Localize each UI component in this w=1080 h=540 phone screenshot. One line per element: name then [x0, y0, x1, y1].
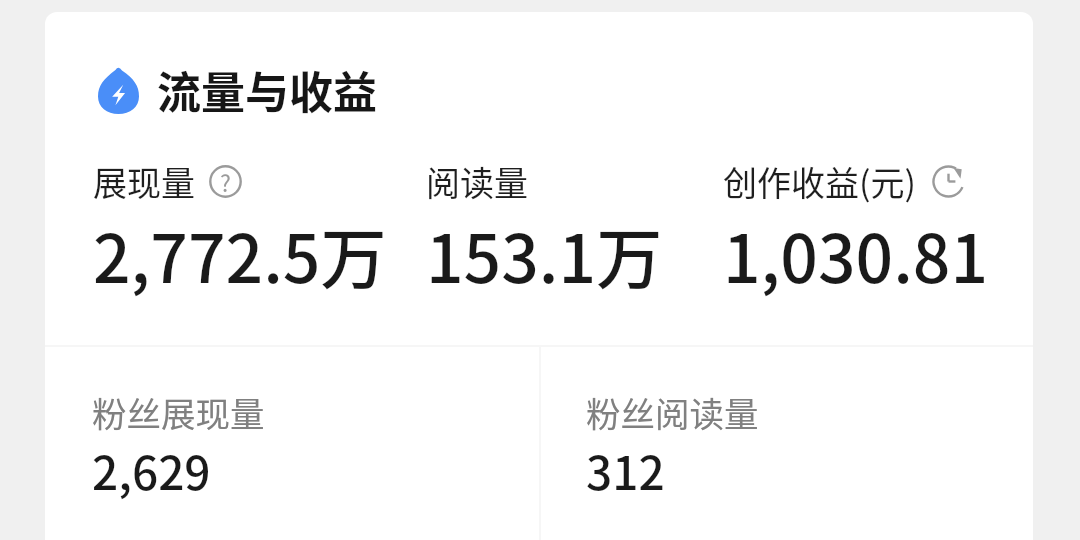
staticText: ? — [220, 165, 231, 198]
button[interactable]: 粉丝展现量 — [45, 347, 538, 540]
staticText: 展现量 — [93, 157, 195, 206]
staticText: 153.1万 — [426, 206, 663, 302]
button[interactable]: 阅读量 — [426, 157, 711, 302]
button[interactable]: 收益历史 — [932, 165, 965, 198]
staticText: 流量与收益 — [157, 58, 377, 122]
button[interactable]: 展现量 — [93, 157, 413, 302]
staticText: 粉丝展现量 — [92, 387, 265, 437]
button[interactable]: 创作收益(元) — [723, 157, 1033, 302]
button[interactable]: 帮助说明 — [209, 165, 242, 198]
staticText: 2,772.5万 — [93, 206, 387, 302]
staticText: 1,030.81 — [723, 206, 989, 302]
staticText: 粉丝阅读量 — [586, 387, 759, 437]
button[interactable]: 流量与收益 — [98, 58, 377, 122]
staticText: 312 — [586, 437, 665, 504]
staticText: 2,629 — [92, 437, 211, 504]
button[interactable]: 粉丝阅读量 — [539, 347, 1032, 540]
staticText: 阅读量 — [426, 157, 528, 206]
staticText: 创作收益(元) — [723, 157, 916, 206]
